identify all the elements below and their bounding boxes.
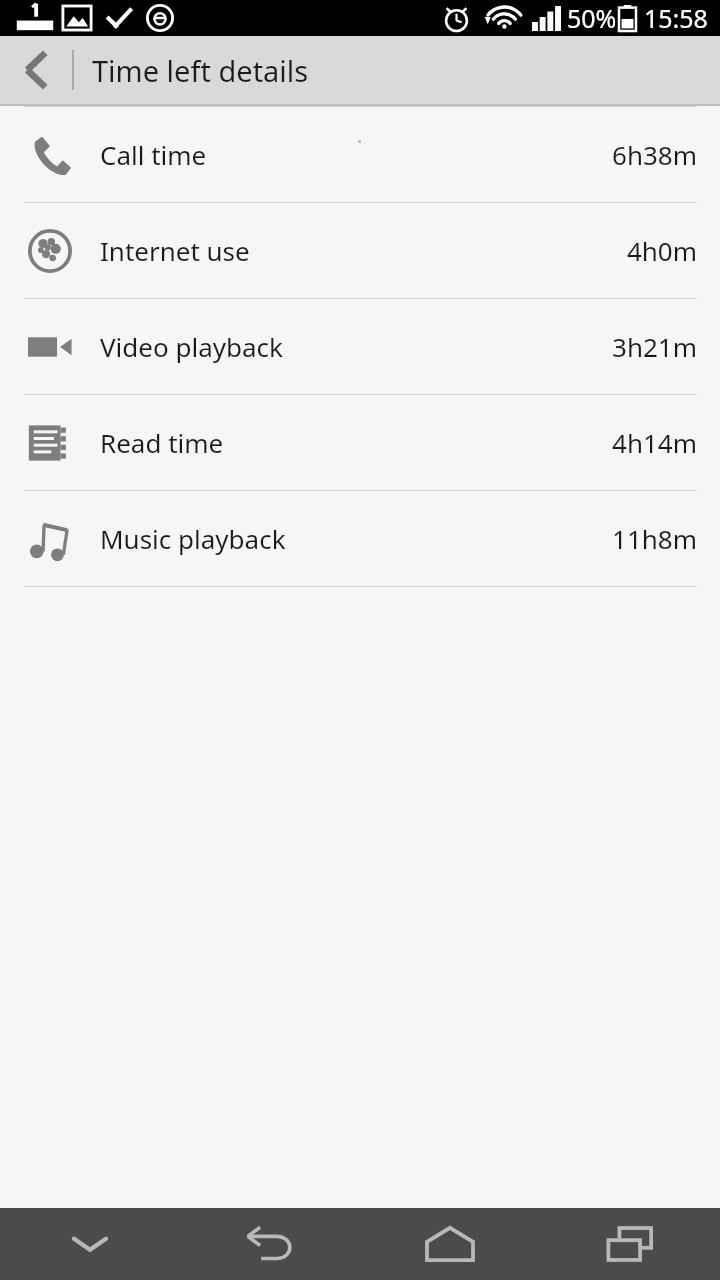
staticText: Time left details	[92, 51, 309, 90]
staticText: Internet use	[100, 233, 626, 268]
staticText: 4h14m	[612, 425, 697, 460]
staticText: Music playback	[100, 521, 612, 556]
button[interactable]: Internet use	[0, 203, 720, 298]
staticText: 11h8m	[612, 521, 697, 556]
staticText: 6h38m	[612, 137, 697, 172]
button[interactable]: Back	[180, 1208, 360, 1280]
staticText: Video playback	[100, 329, 612, 364]
button[interactable]: Video playback	[0, 299, 720, 394]
button[interactable]: Home	[360, 1208, 540, 1280]
staticText: 3h21m	[612, 329, 697, 364]
button[interactable]: Hide keyboard	[0, 1208, 180, 1280]
button[interactable]: Music playback	[0, 491, 720, 586]
staticText: Call time	[100, 137, 612, 172]
staticText: 4h0m	[626, 233, 697, 268]
button[interactable]: Call time	[0, 107, 720, 202]
button[interactable]: Back	[0, 36, 72, 104]
staticText: 50%	[567, 1, 617, 35]
button[interactable]: Read time	[0, 395, 720, 490]
button[interactable]: Recent apps	[540, 1208, 720, 1280]
staticText: 15:58	[644, 1, 708, 35]
staticText: Read time	[100, 425, 612, 460]
